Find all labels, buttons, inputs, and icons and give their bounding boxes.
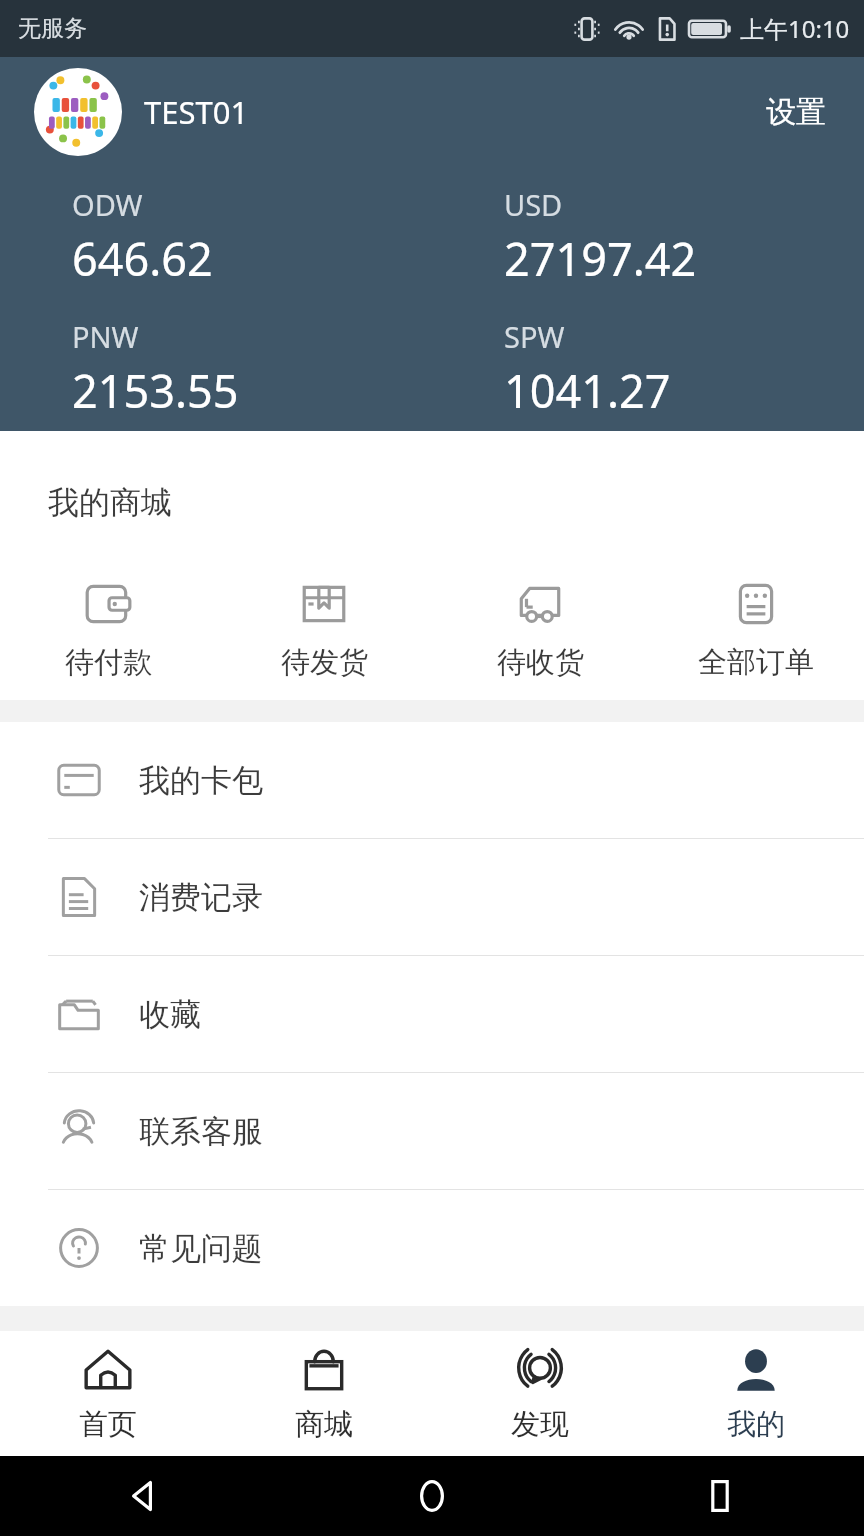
button[interactable]: Recent apps: [576, 1456, 864, 1536]
staticText: 待收货: [497, 644, 584, 681]
staticText: 收藏: [139, 995, 201, 1034]
button[interactable]: TEST01: [34, 68, 249, 156]
button[interactable]: 联系客服: [0, 1073, 864, 1189]
staticText: 消费记录: [139, 878, 263, 917]
staticText: 发现: [511, 1406, 569, 1443]
staticText: PNW: [72, 317, 139, 356]
staticText: USD: [504, 185, 563, 224]
staticText: 首页: [79, 1406, 137, 1443]
button[interactable]: Home: [288, 1456, 576, 1536]
staticText: 2153.55: [72, 360, 239, 421]
staticText: 我的卡包: [139, 761, 263, 800]
staticText: 无服务: [18, 14, 87, 43]
button[interactable]: 发现: [432, 1331, 648, 1456]
button[interactable]: 首页: [0, 1331, 216, 1456]
staticText: 1041.27: [504, 360, 671, 421]
staticText: 我的: [727, 1406, 785, 1443]
button[interactable]: 我的: [648, 1331, 864, 1456]
staticText: 设置: [766, 93, 826, 131]
button[interactable]: 待付款: [0, 574, 216, 685]
staticText: ODW: [72, 185, 143, 224]
staticText: 全部订单: [698, 644, 814, 681]
button[interactable]: 消费记录: [0, 839, 864, 955]
staticText: 待付款: [65, 644, 152, 681]
button[interactable]: 我的卡包: [0, 722, 864, 838]
button[interactable]: 待发货: [216, 574, 432, 685]
button[interactable]: 常见问题: [0, 1190, 864, 1306]
staticText: 上午10:10: [740, 12, 850, 45]
button[interactable]: 设置: [758, 83, 834, 141]
staticText: TEST01: [144, 91, 249, 133]
button[interactable]: 商城: [216, 1331, 432, 1456]
staticText: 商城: [295, 1406, 353, 1443]
staticText: 联系客服: [139, 1112, 263, 1151]
staticText: 我的商城: [48, 483, 172, 522]
staticText: SPW: [504, 317, 565, 356]
staticText: 常见问题: [139, 1229, 263, 1268]
staticText: 27197.42: [504, 228, 697, 289]
button[interactable]: 收藏: [0, 956, 864, 1072]
button[interactable]: Back: [0, 1456, 288, 1536]
button[interactable]: 全部订单: [648, 574, 864, 685]
staticText: 646.62: [72, 228, 213, 289]
button[interactable]: 待收货: [432, 574, 648, 685]
staticText: 待发货: [281, 644, 368, 681]
